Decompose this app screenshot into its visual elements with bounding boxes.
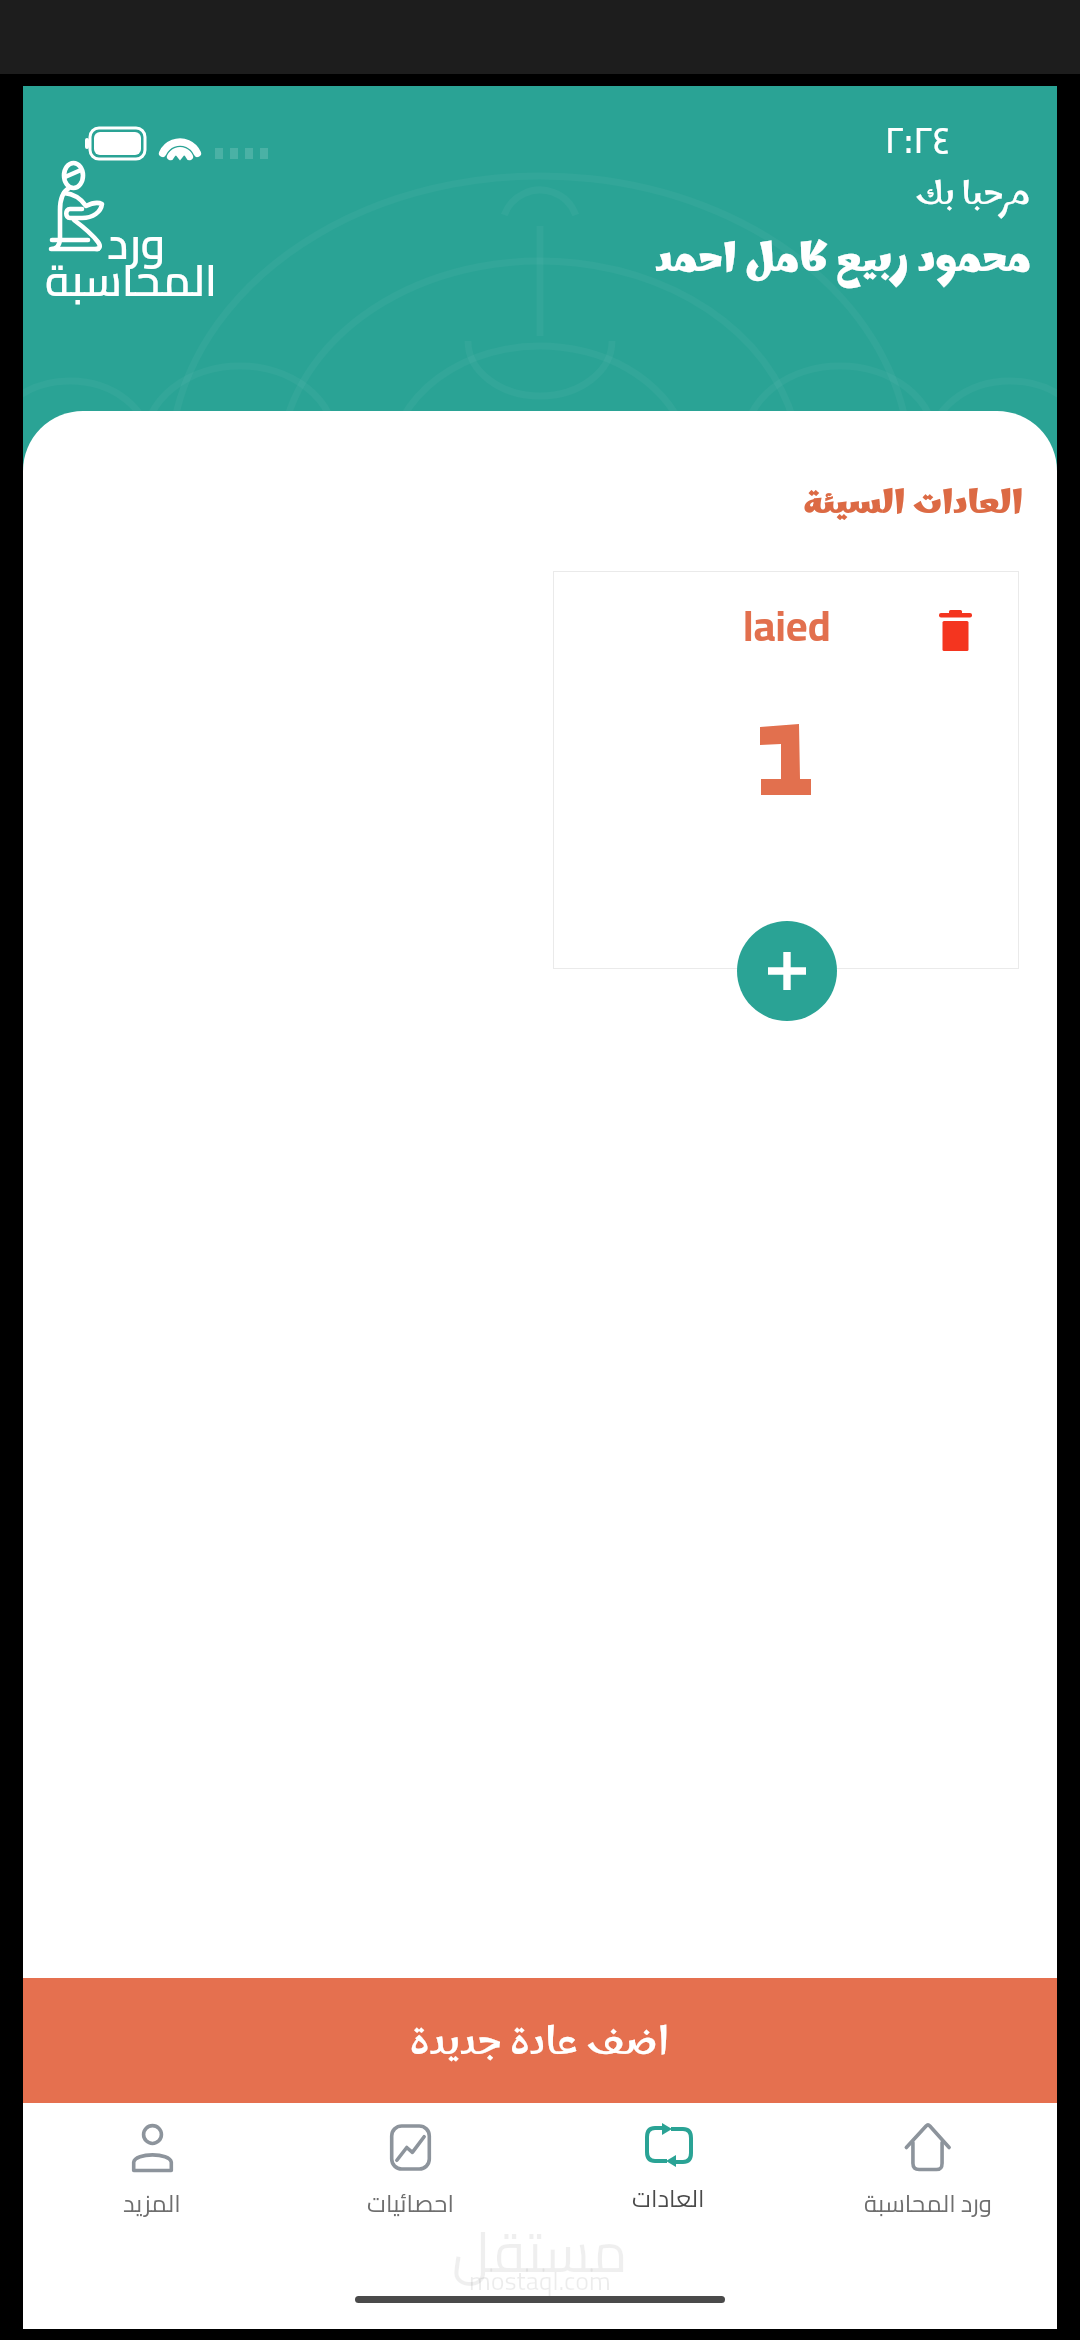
button[interactable]: ورد المحاسبة xyxy=(798,2103,1057,2225)
staticText: العادات xyxy=(632,2176,705,2221)
staticText: المحاسبة xyxy=(45,239,218,321)
staticText: laied xyxy=(743,586,831,665)
button[interactable]: المزيد xyxy=(23,2103,281,2225)
staticText: مرحبا بك xyxy=(915,168,1031,225)
button[interactable]: Increment habit xyxy=(737,921,837,1021)
staticText: اضف عادة جديدة xyxy=(410,2010,670,2080)
staticText: ‎٢:٢٤ xyxy=(884,103,951,174)
staticText: ورد المحاسبة xyxy=(864,2181,992,2225)
staticText: محمود ربيع كامل احمد xyxy=(655,226,1031,297)
staticText: ورد xyxy=(107,202,166,284)
button[interactable]: احصائيات xyxy=(281,2103,539,2225)
button[interactable]: العادات xyxy=(539,2103,798,2225)
staticText: mostaql.com xyxy=(469,2256,611,2305)
button[interactable]: اضف عادة جديدة xyxy=(23,1978,1057,2103)
button[interactable]: Delete habit xyxy=(933,601,977,657)
staticText: مستقل xyxy=(452,2199,628,2303)
staticText: احصائيات xyxy=(367,2181,454,2225)
staticText: المزيد xyxy=(123,2181,181,2225)
staticText: العادات السيئة xyxy=(23,476,1023,535)
